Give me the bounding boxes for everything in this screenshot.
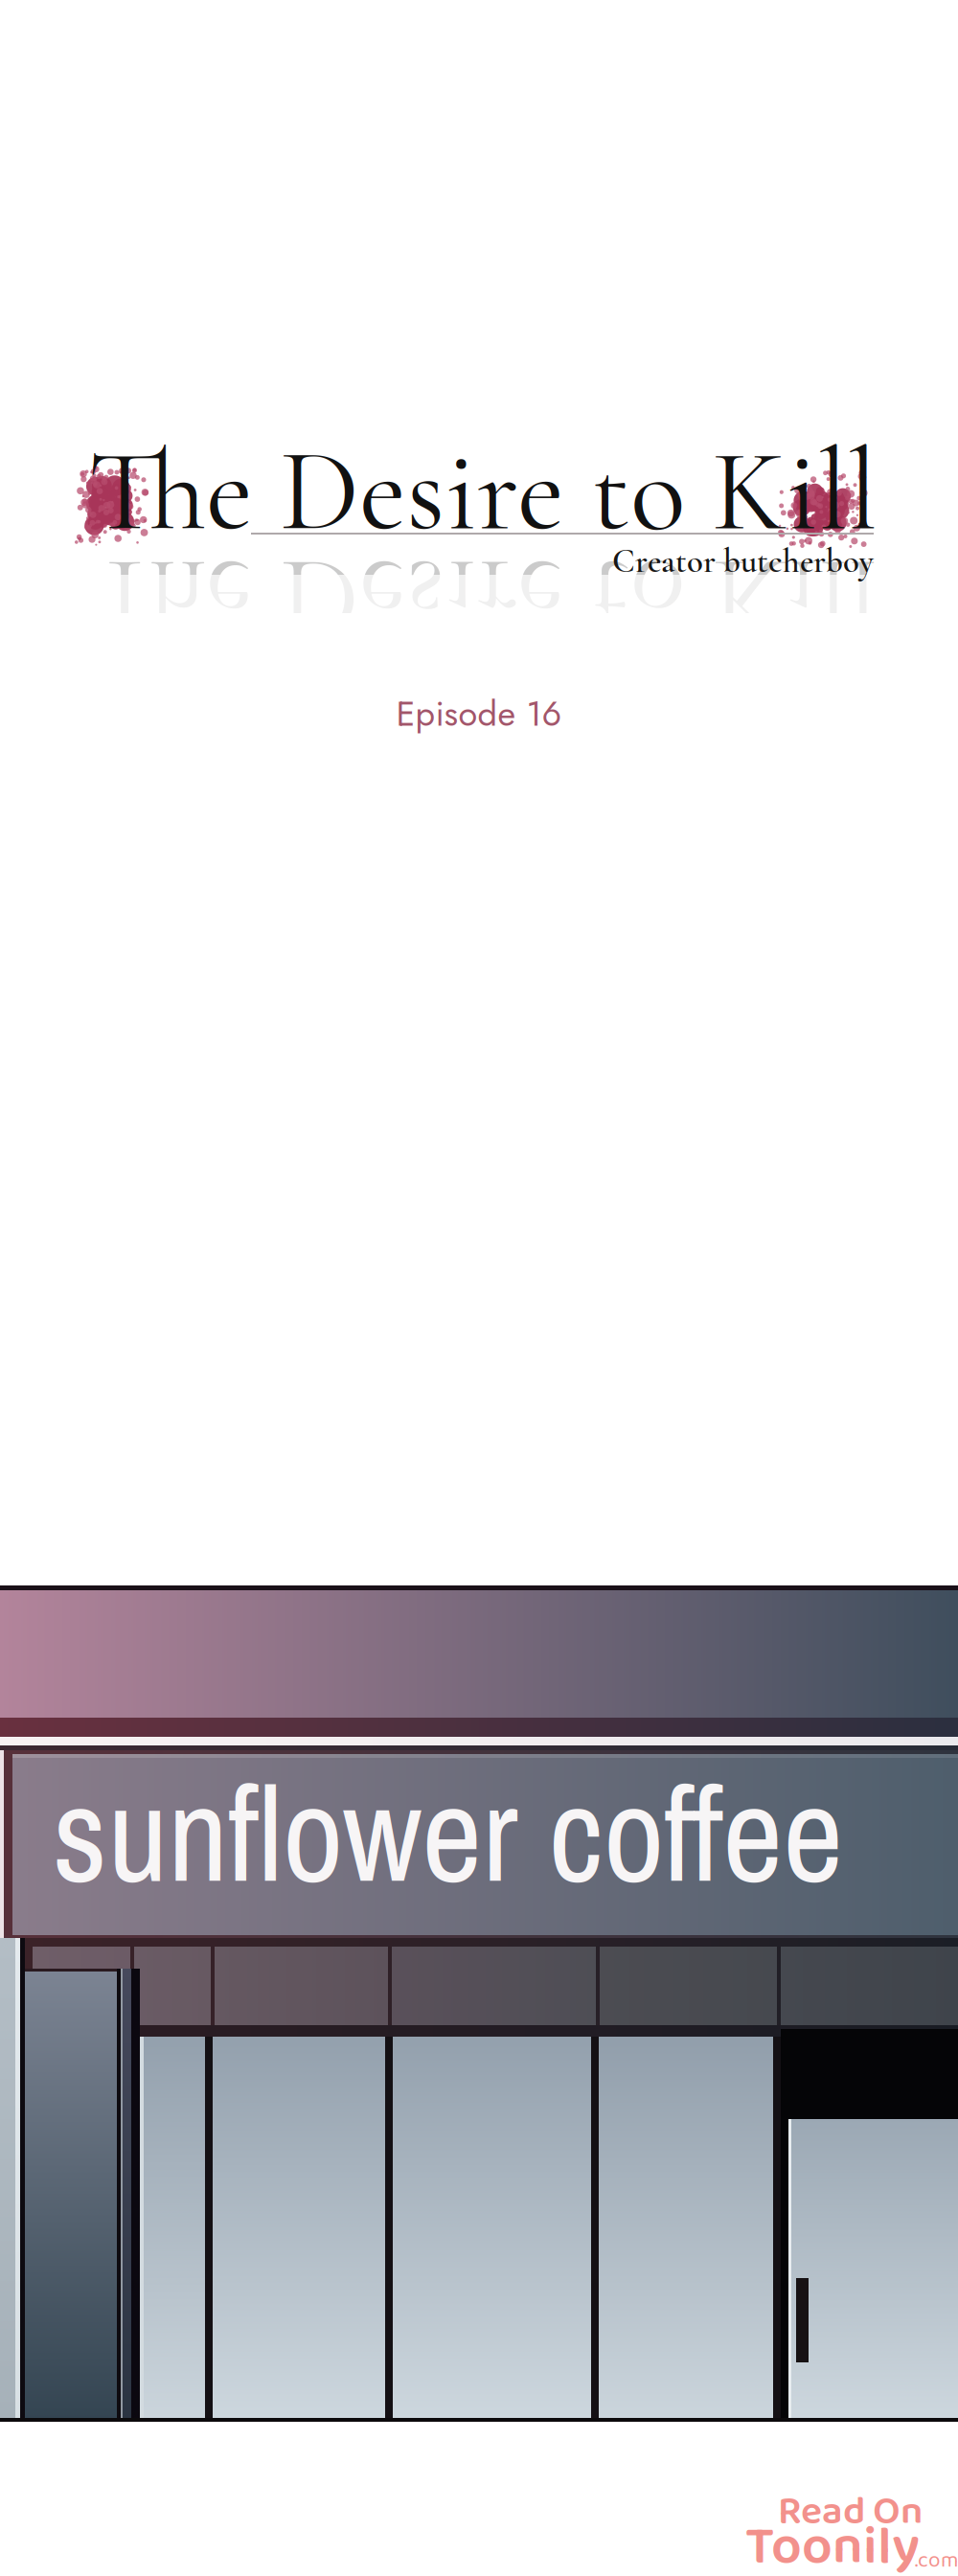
staticText: Read On	[778, 2480, 923, 2544]
staticText: The Desire to Kill	[88, 529, 878, 668]
staticText: sunflower coffee	[53, 1743, 843, 1922]
staticText: Toonily	[745, 2504, 920, 2576]
staticText: The Desire to Kill	[88, 422, 878, 561]
staticText: Episode 16	[396, 689, 562, 739]
staticText: Creator butcherboy	[612, 541, 874, 581]
staticText: .com	[915, 2543, 958, 2576]
